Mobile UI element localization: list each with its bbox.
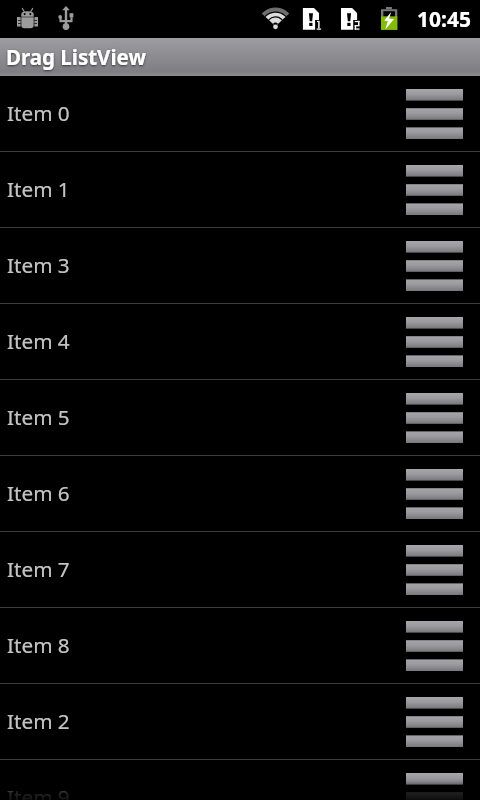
other: Drag handle <box>406 241 463 291</box>
staticText: Item 1 <box>7 175 70 203</box>
staticText: Drag ListView <box>6 43 146 71</box>
button[interactable]: Item 7 <box>0 532 480 608</box>
button[interactable]: Item 1 <box>0 152 480 228</box>
staticText: Item 6 <box>7 479 70 507</box>
other: Drag handle <box>406 773 463 800</box>
button[interactable]: Item 3 <box>0 228 480 304</box>
button[interactable]: Item 4 <box>0 304 480 380</box>
button[interactable]: Item 9 <box>0 760 480 800</box>
staticText: Item 8 <box>7 631 70 659</box>
button[interactable]: Item 5 <box>0 380 480 456</box>
other: Drag handle <box>406 317 463 367</box>
other: Drag handle <box>406 393 463 443</box>
button[interactable]: Item 2 <box>0 684 480 760</box>
other: Drag handle <box>406 697 463 747</box>
staticText: Item 4 <box>7 327 70 355</box>
button[interactable]: Item 6 <box>0 456 480 532</box>
other: Drag handle <box>406 469 463 519</box>
staticText: Item 2 <box>7 707 70 735</box>
staticText: Item 9 <box>7 783 70 800</box>
staticText: Item 7 <box>7 555 70 583</box>
staticText: Item 5 <box>7 403 70 431</box>
button[interactable]: Item 8 <box>0 608 480 684</box>
other: Drag handle <box>406 621 463 671</box>
staticText: 10:45 <box>417 5 471 34</box>
other: Drag handle <box>406 89 463 139</box>
other: Drag handle <box>406 545 463 595</box>
staticText: Item 3 <box>7 251 70 279</box>
staticText: Item 0 <box>7 99 70 127</box>
button[interactable]: Item 0 <box>0 76 480 152</box>
other: Drag handle <box>406 165 463 215</box>
